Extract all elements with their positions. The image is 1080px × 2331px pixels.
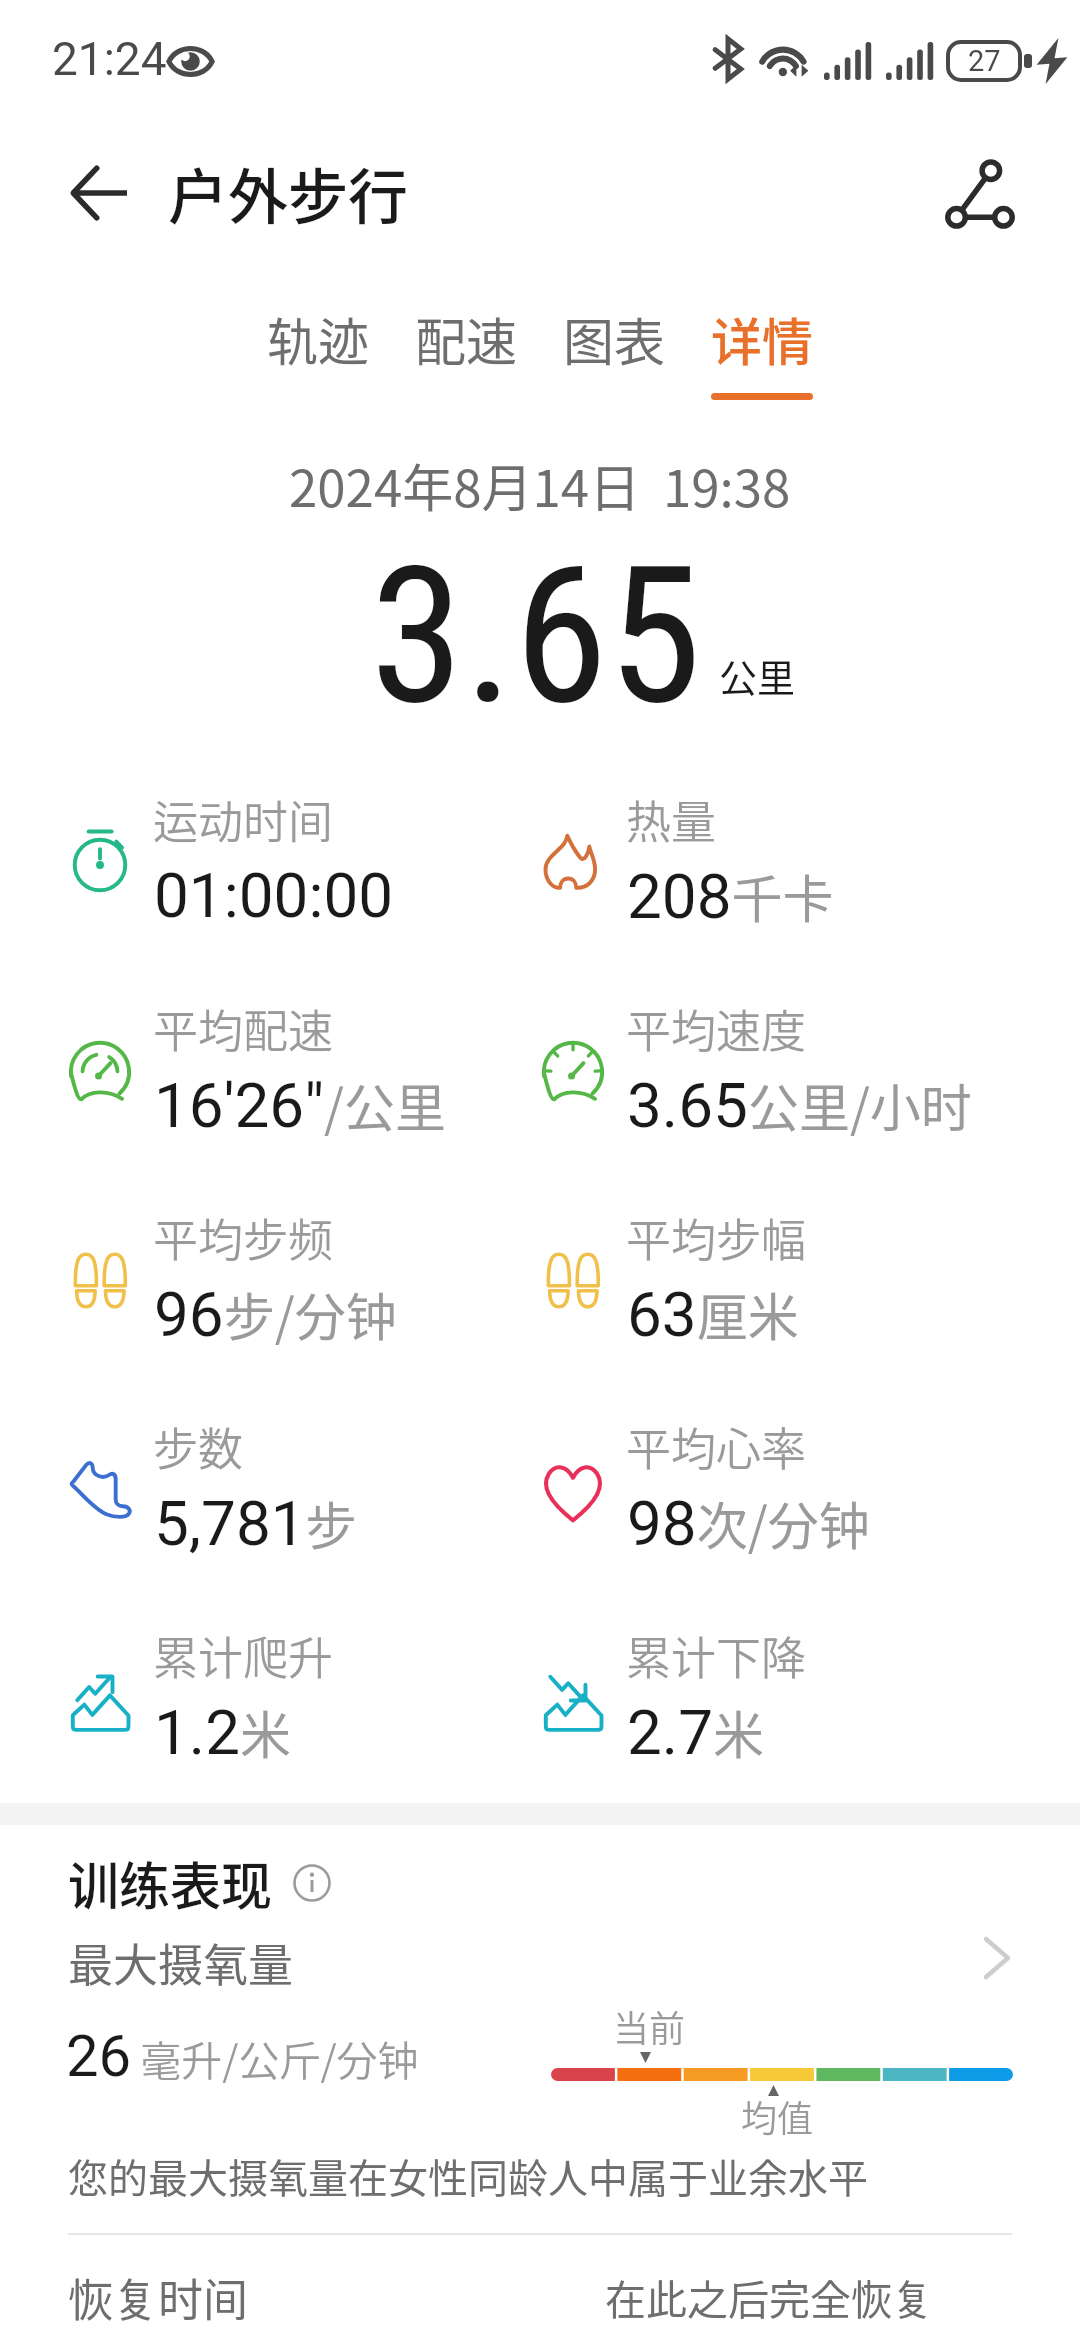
button[interactable]: Share (925, 139, 1035, 249)
staticText: 图表 (563, 302, 666, 376)
staticText: 208千卡 (627, 859, 834, 933)
button[interactable]: 配速 (412, 292, 520, 412)
staticText: 轨迹 (267, 302, 370, 376)
staticText: 26 毫升/公斤/分钟 (66, 2022, 419, 2090)
button[interactable]: 累计爬升 (68, 1623, 540, 1823)
button[interactable]: 平均配速 (68, 996, 540, 1196)
staticText: 步数 (153, 1414, 244, 1479)
staticText: 3.65 (370, 525, 702, 748)
staticText: 详情 (711, 302, 814, 376)
staticText: 均值 (741, 2090, 814, 2142)
staticText: 21:24 (52, 32, 167, 86)
button[interactable]: 轨迹 (264, 292, 372, 412)
button[interactable]: 图表 (560, 292, 668, 412)
button[interactable]: 累计下降 (541, 1623, 1013, 1823)
staticText: 累计下降 (626, 1623, 807, 1688)
button[interactable]: 平均心率 (541, 1414, 1013, 1614)
button[interactable]: Info (289, 1860, 335, 1906)
button[interactable]: 详情 (708, 292, 816, 412)
staticText: 平均步频 (153, 1205, 334, 1270)
staticText: 公里 (719, 648, 796, 703)
staticText: 2024年8月14日 19:38 (289, 448, 791, 522)
staticText: 训练表现 (68, 1846, 273, 1920)
staticText: 恢复时间 (68, 2265, 249, 2330)
button[interactable]: 运动时间 (68, 787, 540, 987)
button[interactable]: 热量 (541, 787, 1013, 987)
staticText: 最大摄氧量 (68, 1930, 294, 1995)
staticText: 1.2米 (154, 1695, 292, 1769)
staticText: 5,781步 (154, 1486, 357, 1560)
staticText: 平均步幅 (626, 1205, 807, 1270)
staticText: 2.7米 (627, 1695, 765, 1769)
staticText: 当前 (613, 2000, 686, 2052)
staticText: 16'26"/公里 (154, 1068, 447, 1142)
button[interactable]: 最大摄氧量 (0, 1918, 1080, 2128)
button[interactable]: 恢复时间 (0, 2255, 1080, 2331)
staticText: 平均速度 (626, 996, 807, 1061)
staticText: 3.65公里/小时 (627, 1068, 972, 1142)
staticText: 在此之后完全恢复 (605, 2267, 933, 2326)
button[interactable]: 平均步频 (68, 1205, 540, 1405)
staticText: 运动时间 (153, 787, 334, 852)
staticText: 平均心率 (626, 1414, 807, 1479)
staticText: 27 (968, 44, 1001, 78)
staticText: 累计爬升 (153, 1623, 334, 1688)
staticText: 96步/分钟 (154, 1277, 397, 1351)
staticText: 户外步行 (168, 149, 408, 236)
staticText: 热量 (626, 787, 717, 852)
staticText: 平均配速 (153, 996, 334, 1061)
button[interactable]: 平均步幅 (541, 1205, 1013, 1405)
staticText: 98次/分钟 (627, 1486, 870, 1560)
staticText: 01:00:00 (154, 859, 394, 932)
staticText: 您的最大摄氧量在女性同龄人中属于业余水平 (68, 2147, 868, 2205)
button[interactable]: Back (44, 138, 154, 248)
button[interactable]: 平均速度 (541, 996, 1013, 1196)
staticText: 63厘米 (627, 1277, 799, 1351)
staticText: 配速 (415, 302, 518, 376)
button[interactable]: 步数 (68, 1414, 540, 1614)
